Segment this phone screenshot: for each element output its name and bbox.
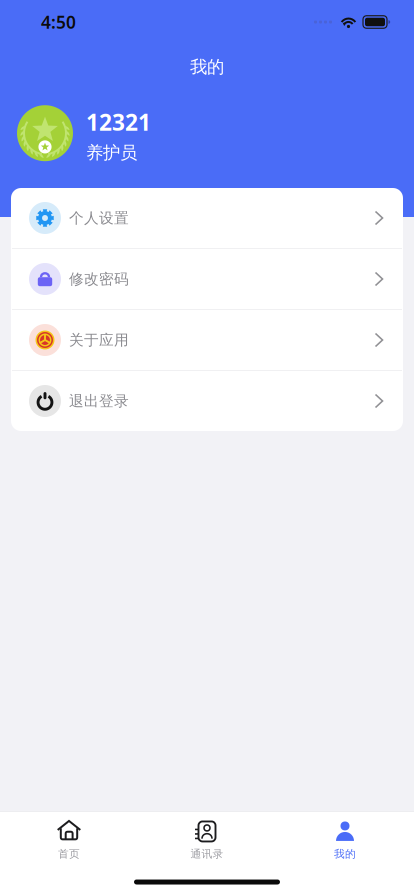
- staticText: 12321: [86, 107, 151, 137]
- button[interactable]: 个人设置: [11, 188, 403, 248]
- staticText: 关于应用: [69, 331, 129, 349]
- staticText: 4:50: [41, 10, 76, 33]
- button[interactable]: 修改密码: [11, 249, 403, 309]
- staticText: 通讯录: [190, 847, 223, 860]
- staticText: 我的: [190, 56, 224, 78]
- staticText: 首页: [58, 847, 80, 860]
- button[interactable]: 首页: [0, 814, 138, 866]
- staticText: 个人设置: [69, 209, 129, 227]
- staticText: 修改密码: [69, 270, 129, 288]
- button[interactable]: 通讯录: [138, 814, 276, 866]
- button[interactable]: 退出登录: [11, 371, 403, 431]
- button[interactable]: 关于应用: [11, 310, 403, 370]
- button[interactable]: 我的: [276, 814, 414, 866]
- staticText: 我的: [334, 847, 356, 860]
- staticText: 退出登录: [69, 392, 129, 410]
- staticText: 养护员: [86, 142, 137, 163]
